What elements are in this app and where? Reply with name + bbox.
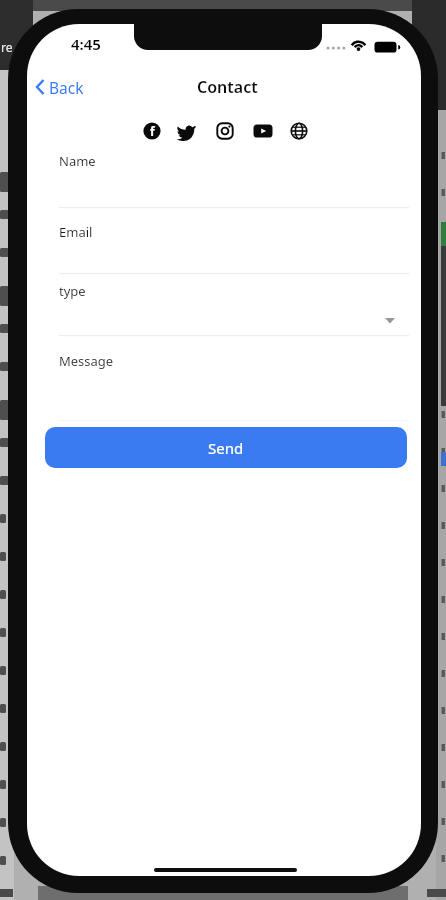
staticText: type xyxy=(59,282,86,300)
button[interactable]: Send xyxy=(45,427,407,468)
staticText: Name xyxy=(59,152,96,170)
button[interactable] xyxy=(253,124,273,138)
staticText: re xyxy=(1,39,13,55)
staticText: 4:45 xyxy=(71,34,101,54)
button[interactable] xyxy=(290,122,308,140)
staticText: Contact xyxy=(197,76,258,98)
staticText: Email xyxy=(59,223,93,241)
button[interactable] xyxy=(59,243,409,274)
button[interactable] xyxy=(216,122,234,140)
button[interactable] xyxy=(176,122,196,140)
staticText: f xyxy=(150,123,155,139)
staticText: Back xyxy=(49,77,84,98)
button[interactable] xyxy=(59,302,409,336)
staticText: Send xyxy=(208,438,244,458)
button[interactable]: Back xyxy=(33,76,97,98)
staticText: Message xyxy=(59,352,114,370)
button[interactable]: f xyxy=(143,122,161,140)
